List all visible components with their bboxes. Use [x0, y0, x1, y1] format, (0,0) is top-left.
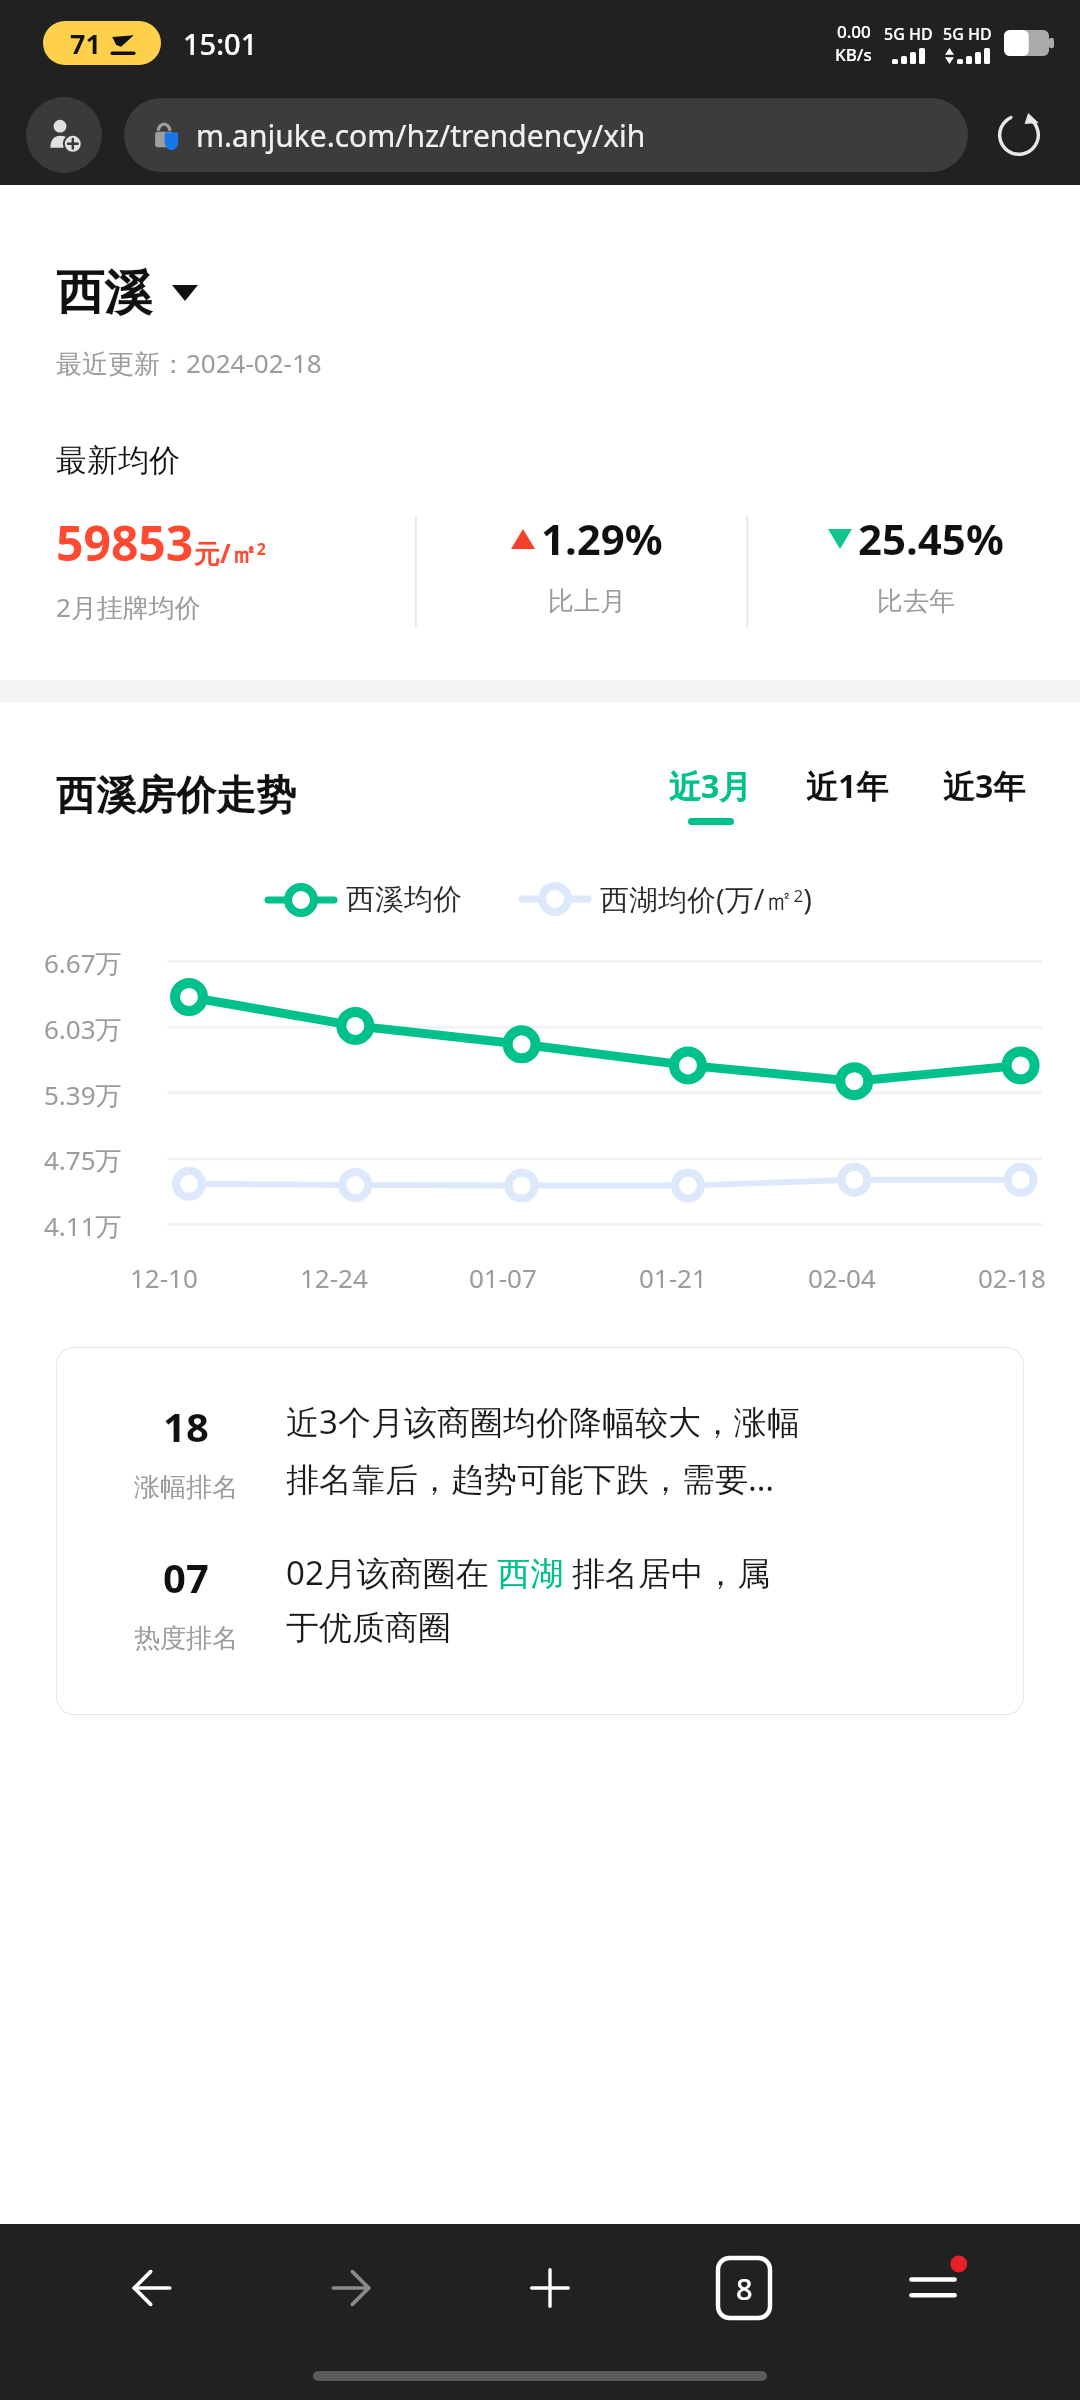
button[interactable]: 近3月 — [665, 760, 756, 829]
staticText: 于优质商圈 — [286, 1607, 451, 1649]
staticText: 01-07 — [469, 1260, 537, 1295]
staticText: 5G — [884, 23, 905, 45]
staticText: 15:01 — [183, 24, 258, 63]
staticText: KB/s — [835, 43, 872, 66]
staticText: 最新均价 — [56, 441, 180, 480]
staticText: 25.45% — [858, 510, 1004, 567]
staticText: 12-24 — [300, 1260, 368, 1295]
button[interactable]: Reload — [984, 100, 1054, 170]
staticText: 4.75万 — [44, 1142, 122, 1178]
staticText: 07 — [163, 1550, 209, 1604]
staticText: 5G — [943, 23, 964, 45]
button[interactable]: Tabs: 8 — [702, 2246, 786, 2330]
staticText: 71 — [70, 25, 101, 62]
staticText: 最近更新：2024-02-18 — [56, 345, 322, 381]
staticText: 4.11万 — [44, 1208, 122, 1244]
staticText: 近3个月该商圈均价降幅较大，涨幅 — [286, 1399, 800, 1444]
staticText: 2月挂牌均价 — [56, 589, 201, 625]
button[interactable]: 西溪 — [56, 263, 198, 323]
staticText: 18 — [163, 1399, 209, 1453]
button[interactable]: Forward — [304, 2241, 398, 2335]
staticText: 西溪均价 — [346, 881, 462, 918]
staticText: 排名靠后，趋势可能下跌，需要… — [286, 1456, 775, 1501]
staticText: m.anjuke.com/hz/trendency/xih — [196, 115, 646, 156]
staticText: 比上月 — [548, 585, 626, 618]
button[interactable]: 近3年 — [939, 760, 1030, 829]
staticText: 5.39万 — [44, 1077, 122, 1113]
staticText: 比去年 — [877, 585, 955, 618]
button[interactable]: m.anjuke.com/hz/trendency/xih — [124, 98, 968, 172]
staticText: 02-04 — [808, 1260, 876, 1295]
button[interactable]: 近1年 — [802, 760, 893, 829]
staticText: 西溪房价走势 — [56, 770, 296, 820]
staticText: 热度排名 — [134, 1622, 238, 1655]
staticText: 西溪 — [56, 263, 152, 323]
staticText: 01-21 — [639, 1260, 707, 1295]
staticText: 6.03万 — [44, 1011, 122, 1047]
staticText: 近1年 — [806, 764, 889, 808]
button[interactable]: Add profile — [26, 97, 102, 173]
button[interactable]: Back — [105, 2241, 199, 2335]
button[interactable]: Menu — [891, 2246, 975, 2330]
staticText: 近3年 — [943, 764, 1026, 808]
staticText: 02-18 — [978, 1260, 1046, 1295]
staticText: 1.29% — [541, 510, 663, 567]
staticText: 12-10 — [130, 1260, 198, 1295]
button[interactable]: New tab — [503, 2241, 597, 2335]
staticText: 8 — [736, 2269, 753, 2308]
staticText: 西湖均价(万/㎡2) — [600, 879, 812, 919]
staticText: 元/㎡2 — [194, 535, 266, 571]
staticText: 0.00 — [837, 20, 871, 43]
staticText: 02月该商圈在 西湖 排名居中，属 — [286, 1550, 770, 1595]
staticText: 涨幅排名 — [134, 1471, 238, 1504]
staticText: 6.67万 — [44, 945, 122, 981]
staticText: HD — [968, 23, 992, 45]
staticText: 59853 — [56, 510, 194, 575]
staticText: 近3月 — [669, 764, 752, 808]
staticText: HD — [909, 23, 933, 45]
